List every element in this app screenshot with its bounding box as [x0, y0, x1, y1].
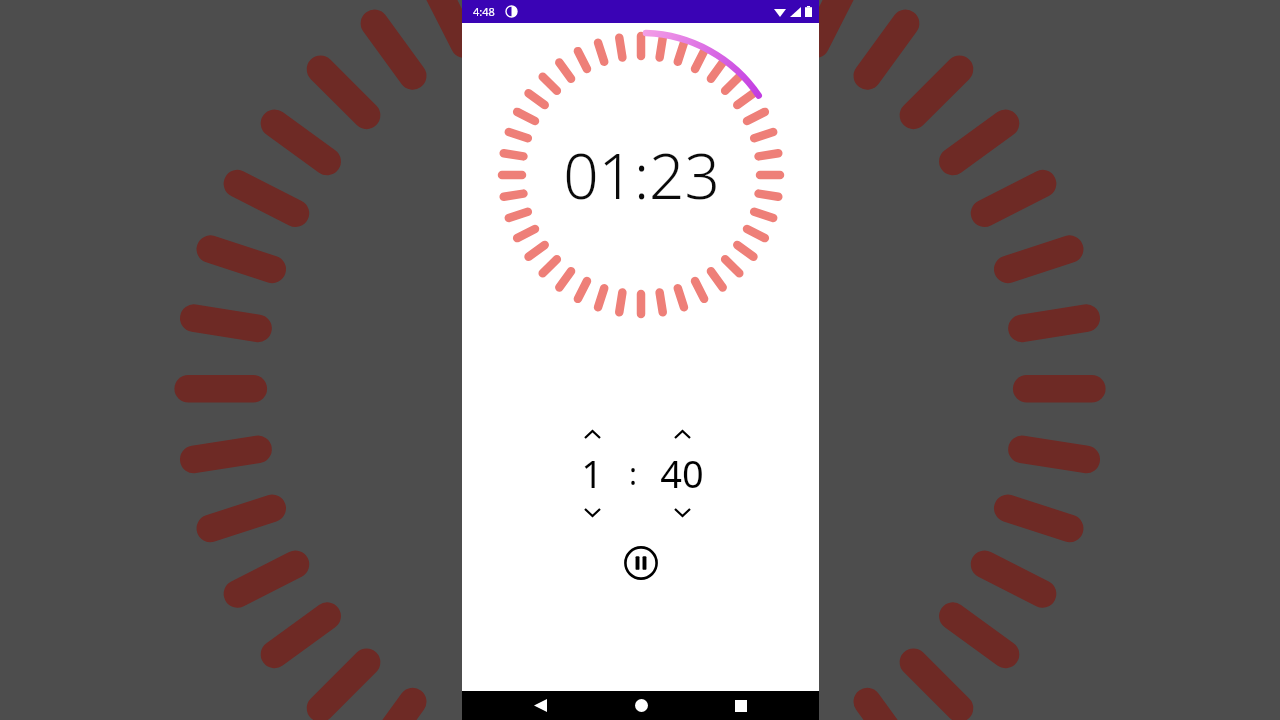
button[interactable]: Increase seconds [651, 423, 713, 445]
staticText: 01:23 [563, 133, 720, 217]
staticText: 1 [581, 447, 603, 499]
button[interactable]: Increase minutes [569, 423, 615, 445]
button[interactable]: Back [517, 691, 563, 720]
button[interactable]: Pause [619, 541, 663, 585]
staticText: 4:48 [473, 4, 495, 19]
staticText: : [629, 453, 638, 494]
button[interactable]: Recents [718, 691, 764, 720]
staticText: 40 [660, 447, 704, 499]
button[interactable]: Decrease minutes [569, 501, 615, 523]
button[interactable]: Decrease seconds [651, 501, 713, 523]
button[interactable]: Home [618, 691, 664, 720]
